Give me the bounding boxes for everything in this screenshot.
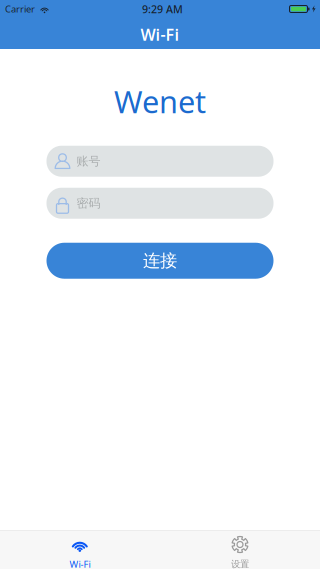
staticText: Carrier [5,3,35,15]
staticText: 设置 [231,558,249,569]
staticText: Wi-Fi [69,558,90,569]
button[interactable]: 连接 [46,243,273,279]
staticText: Wi-Fi [140,24,179,45]
staticText: Wenet [114,81,206,122]
button[interactable]: 设置 [160,531,320,569]
staticText: 密码 [76,196,100,211]
button[interactable]: Wi-Fi [0,531,160,569]
staticText: 9:29 AM [142,2,183,16]
staticText: 连接 [143,250,177,271]
staticText: 账号 [76,154,100,169]
